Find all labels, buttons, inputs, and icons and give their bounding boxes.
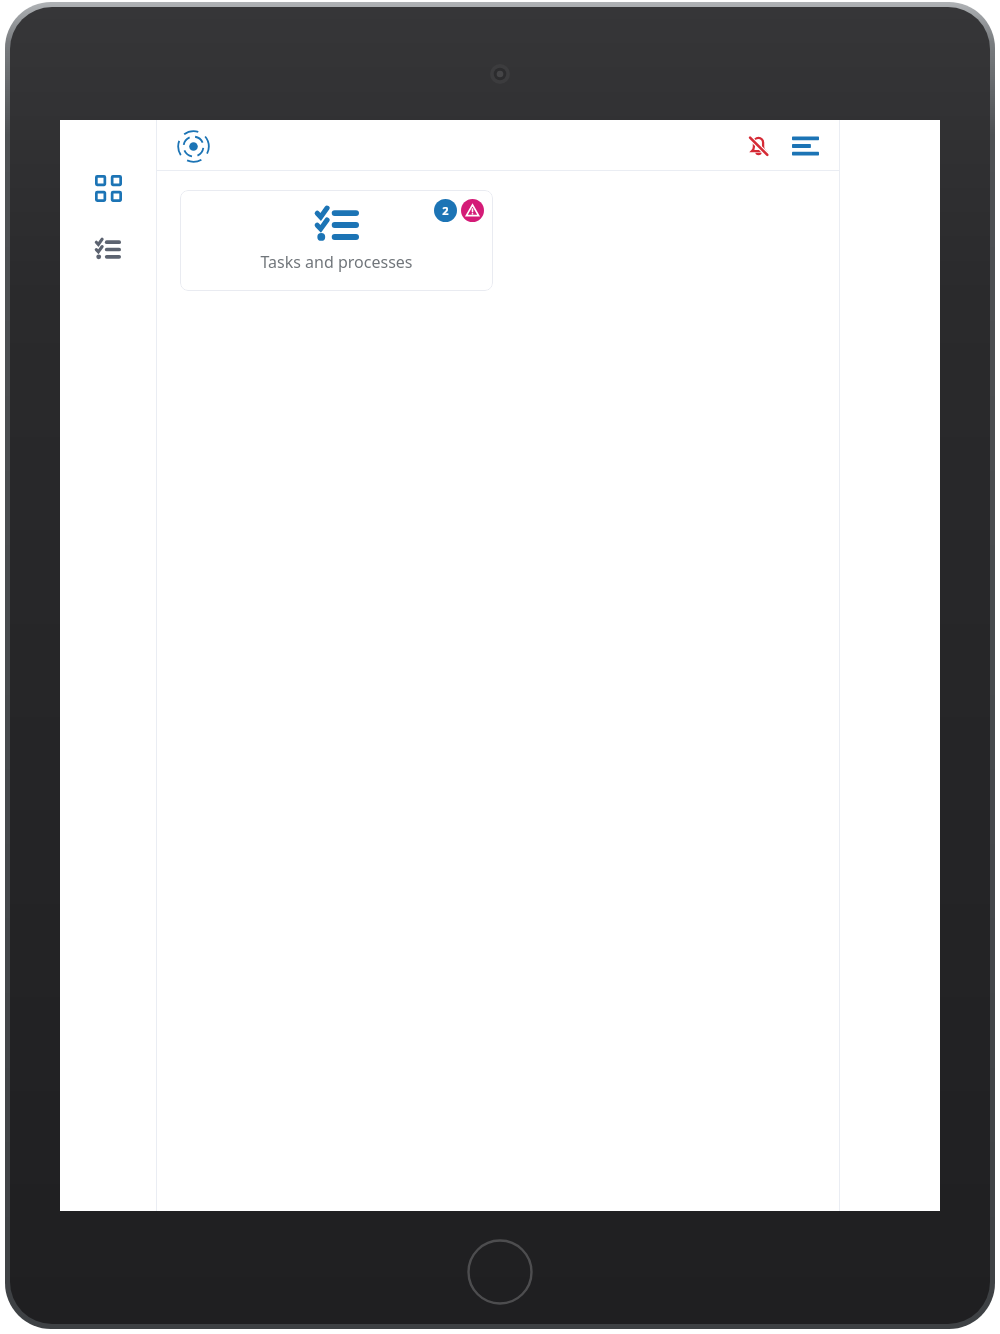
button[interactable]: Dashboard bbox=[83, 163, 133, 213]
button[interactable]: Notifications off bbox=[738, 126, 778, 166]
button[interactable]: Home bbox=[171, 124, 215, 168]
button[interactable]: Tasks and processes bbox=[83, 224, 133, 274]
button[interactable]: Menu bbox=[785, 126, 825, 166]
staticText: Tasks and processes bbox=[260, 251, 413, 273]
button[interactable]: Tasks and processes bbox=[180, 190, 493, 291]
staticText: 2 bbox=[442, 203, 449, 218]
